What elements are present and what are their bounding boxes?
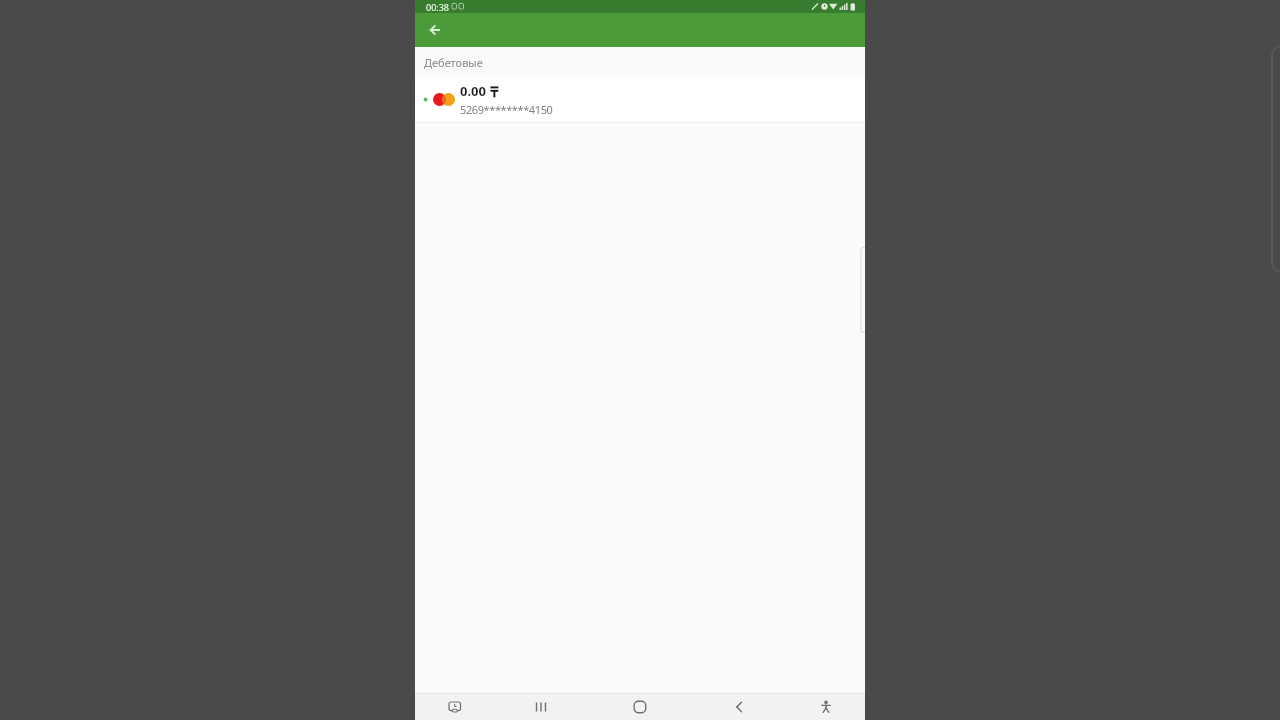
staticText: Дебетовые [424, 55, 483, 70]
staticText: 0.00 [460, 82, 486, 100]
staticText: 5269********4150 [460, 102, 553, 117]
staticText: 00:38 [426, 1, 450, 13]
